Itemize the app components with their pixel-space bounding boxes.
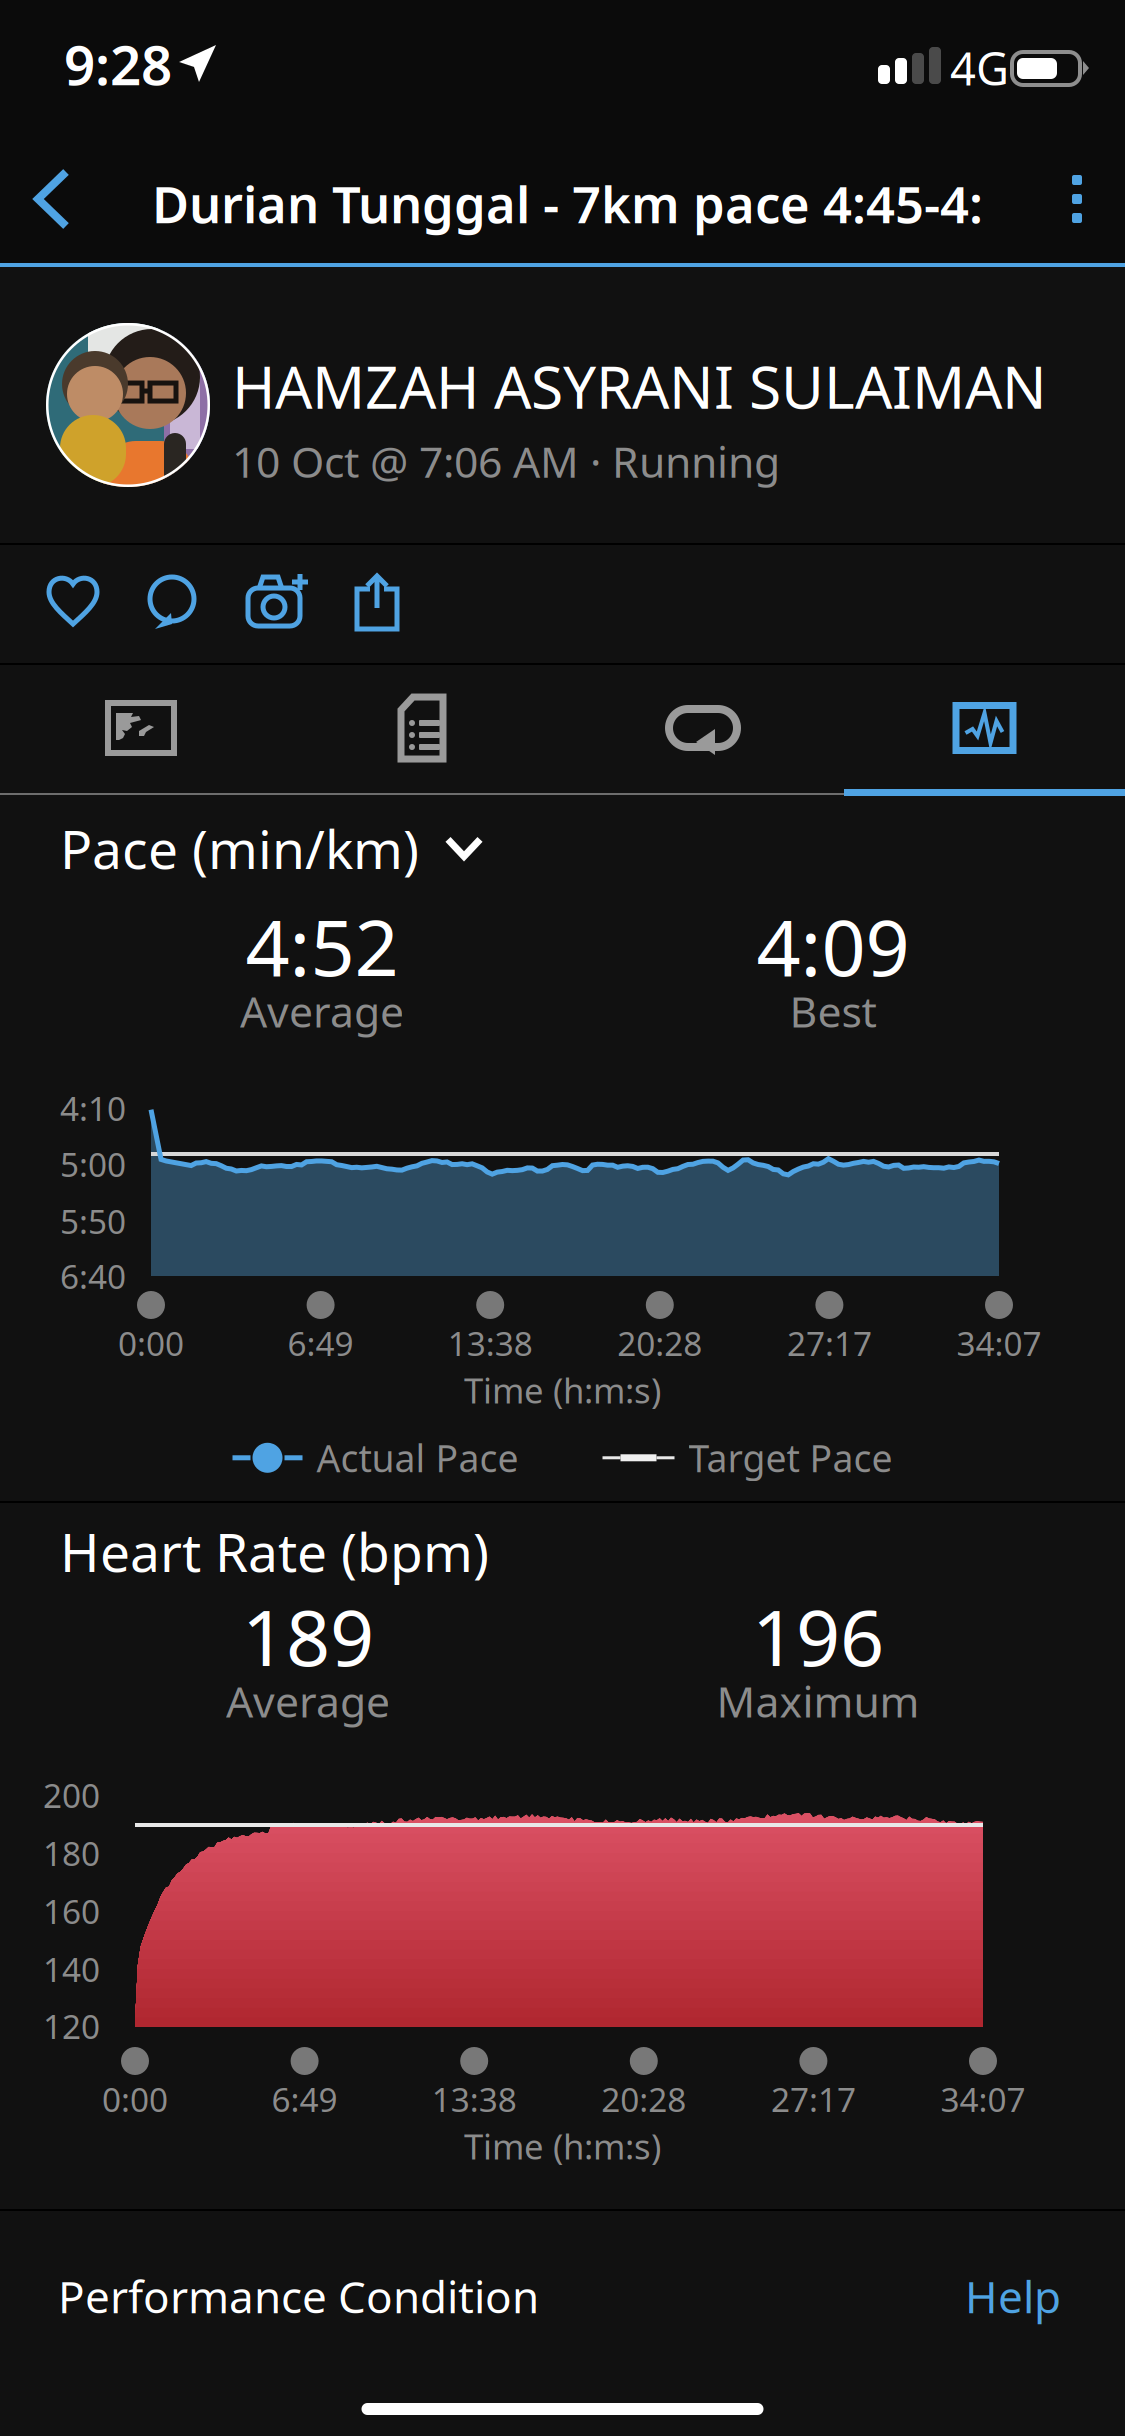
staticText: 20:28 (617, 1321, 702, 1365)
staticText: 9:28 (64, 28, 172, 100)
button[interactable]: Share (327, 544, 427, 662)
staticText: Help (965, 2267, 1061, 2325)
staticText: 0:00 (118, 1321, 184, 1365)
staticText: HAMZAH ASYRANI SULAIMAN (232, 347, 1047, 425)
button[interactable]: Charts (844, 665, 1125, 791)
staticText: 196 (752, 1585, 884, 1687)
staticText: Pace (min/km) (60, 813, 419, 884)
button[interactable]: Details (281, 665, 563, 791)
staticText: Average (240, 983, 404, 1039)
button[interactable]: Comment (122, 544, 222, 662)
staticText: 13:38 (448, 1321, 533, 1365)
button[interactable]: Add photo (229, 542, 329, 660)
staticText: 140 (43, 1947, 100, 1991)
staticText: 5:50 (60, 1199, 126, 1243)
staticText: 4:10 (60, 1086, 126, 1130)
staticText: 34:07 (956, 1321, 1041, 1365)
staticText: 4:09 (756, 895, 909, 997)
button[interactable]: Like (23, 540, 123, 658)
staticText: 20:28 (601, 2077, 686, 2121)
staticText: 27:17 (771, 2077, 856, 2121)
staticText: 180 (43, 1831, 100, 1875)
button[interactable]: Pace (min/km) (50, 803, 493, 894)
staticText: 6:49 (272, 2077, 338, 2121)
staticText: Durian Tunggal - 7km pace 4:45-4: (152, 170, 983, 237)
staticText: Heart Rate (bpm) (60, 1516, 489, 1587)
staticText: 27:17 (787, 1321, 872, 1365)
staticText: Maximum (716, 1673, 919, 1729)
staticText: 4:52 (245, 895, 398, 997)
staticText: 160 (43, 1889, 100, 1933)
staticText: 189 (242, 1585, 374, 1687)
button[interactable]: Laps (562, 665, 844, 791)
staticText: 6:49 (288, 1321, 354, 1365)
staticText: 120 (43, 2004, 100, 2048)
staticText: 13:38 (432, 2077, 517, 2121)
staticText: Time (h:m:s) (464, 2123, 661, 2169)
button[interactable]: Map (0, 665, 282, 791)
staticText: Best (789, 983, 876, 1039)
staticText: Average (226, 1673, 390, 1729)
staticText: 0:00 (102, 2077, 168, 2121)
staticText: Target Pace (688, 1433, 892, 1483)
button[interactable]: More options (1029, 144, 1125, 254)
button[interactable]: Help (959, 2259, 1067, 2333)
button[interactable]: Back (0, 144, 104, 254)
staticText: 200 (43, 1773, 100, 1817)
staticText: 10 Oct @ 7:06 AM · Running (232, 433, 780, 490)
staticText: 5:00 (60, 1142, 126, 1186)
staticText: Time (h:m:s) (464, 1367, 661, 1413)
staticText: 6:40 (60, 1254, 126, 1298)
staticText: 4G (950, 38, 1009, 98)
staticText: Performance Condition (58, 2267, 539, 2325)
staticText: 34:07 (940, 2077, 1025, 2121)
staticText: Actual Pace (316, 1433, 518, 1483)
